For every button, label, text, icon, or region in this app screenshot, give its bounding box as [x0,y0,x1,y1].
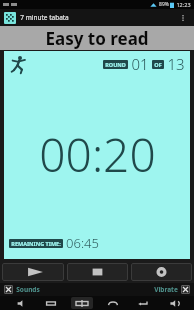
staticText: 12:23 [176,1,191,8]
button[interactable]: App icon [4,12,16,24]
staticText: 89% [159,1,169,8]
staticText: Sounds [16,285,40,294]
staticText: 06:45 [66,234,99,252]
button[interactable]: Stop [67,263,128,281]
staticText: 13 [167,54,185,74]
button[interactable]: Sounds [3,284,41,295]
staticText: 00:20 [39,123,156,186]
staticText: ROUND [105,61,126,68]
button[interactable]: Split screen [71,297,93,309]
staticText: 01 [131,54,149,74]
button[interactable]: Home [103,297,123,310]
button[interactable]: Volume up [164,297,184,310]
staticText: REMAINING TIME: [11,240,61,247]
staticText: Easy to read [45,27,149,50]
button[interactable]: Volume down [10,297,30,310]
button[interactable]: More options [176,11,190,25]
button[interactable]: Settings [131,263,192,281]
staticText: Vibrate [154,285,178,294]
staticText: OF [154,61,162,68]
button[interactable]: Back [133,297,153,310]
other: Exercise [9,55,28,74]
staticText: 7 minute tabata [20,13,69,22]
button[interactable]: Vibrate [153,284,191,295]
button[interactable]: Recent apps [41,297,61,310]
button[interactable]: Start [2,263,64,281]
